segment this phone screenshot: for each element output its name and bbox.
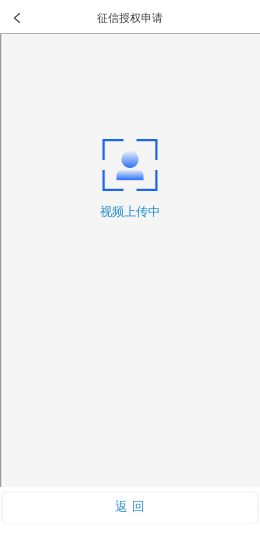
- staticText: 视频上传中: [100, 204, 160, 219]
- staticText: 征信授权申请: [97, 11, 163, 25]
- staticText: 返 回: [115, 499, 145, 514]
- button[interactable]: 返 回: [0, 492, 260, 524]
- button[interactable]: Back: [0, 0, 34, 33]
